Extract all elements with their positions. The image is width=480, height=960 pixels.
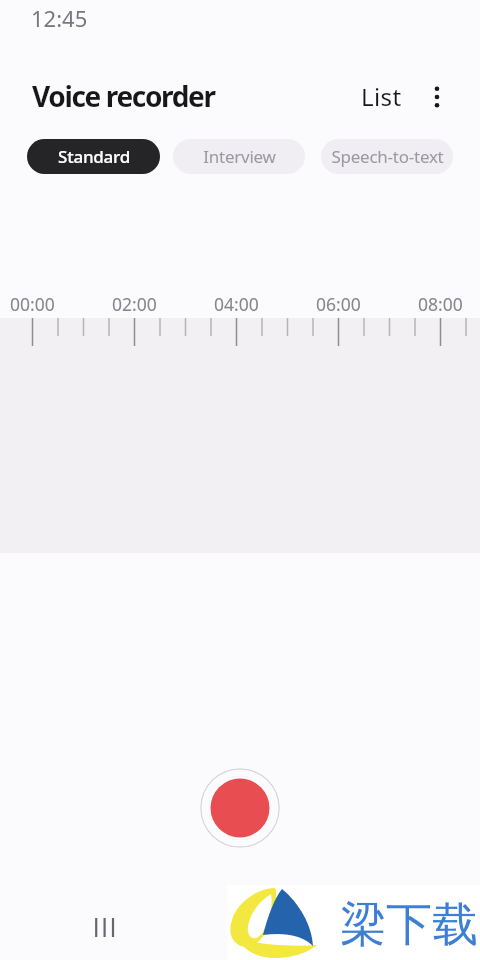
staticText: 06:00 [316, 292, 361, 316]
staticText: Speech-to-text [331, 145, 444, 168]
button[interactable]: Recents [88, 910, 122, 944]
button[interactable]: More options [421, 81, 453, 113]
staticText: 02:00 [112, 292, 157, 316]
staticText: 梁下载 [340, 896, 478, 954]
button[interactable]: Record [200, 768, 280, 848]
staticText: Interview [203, 145, 276, 168]
staticText: 12:45 [31, 3, 88, 33]
staticText: List [361, 80, 402, 113]
staticText: 00:00 [10, 292, 55, 316]
button[interactable]: Interview [173, 139, 305, 174]
staticText: Standard [58, 145, 130, 168]
staticText: 08:00 [418, 292, 463, 316]
button[interactable]: Standard [27, 139, 160, 174]
staticText: 04:00 [214, 292, 259, 316]
staticText: Voice recorder [32, 77, 215, 115]
button[interactable]: List [355, 74, 408, 119]
button[interactable]: Speech-to-text [321, 139, 453, 174]
